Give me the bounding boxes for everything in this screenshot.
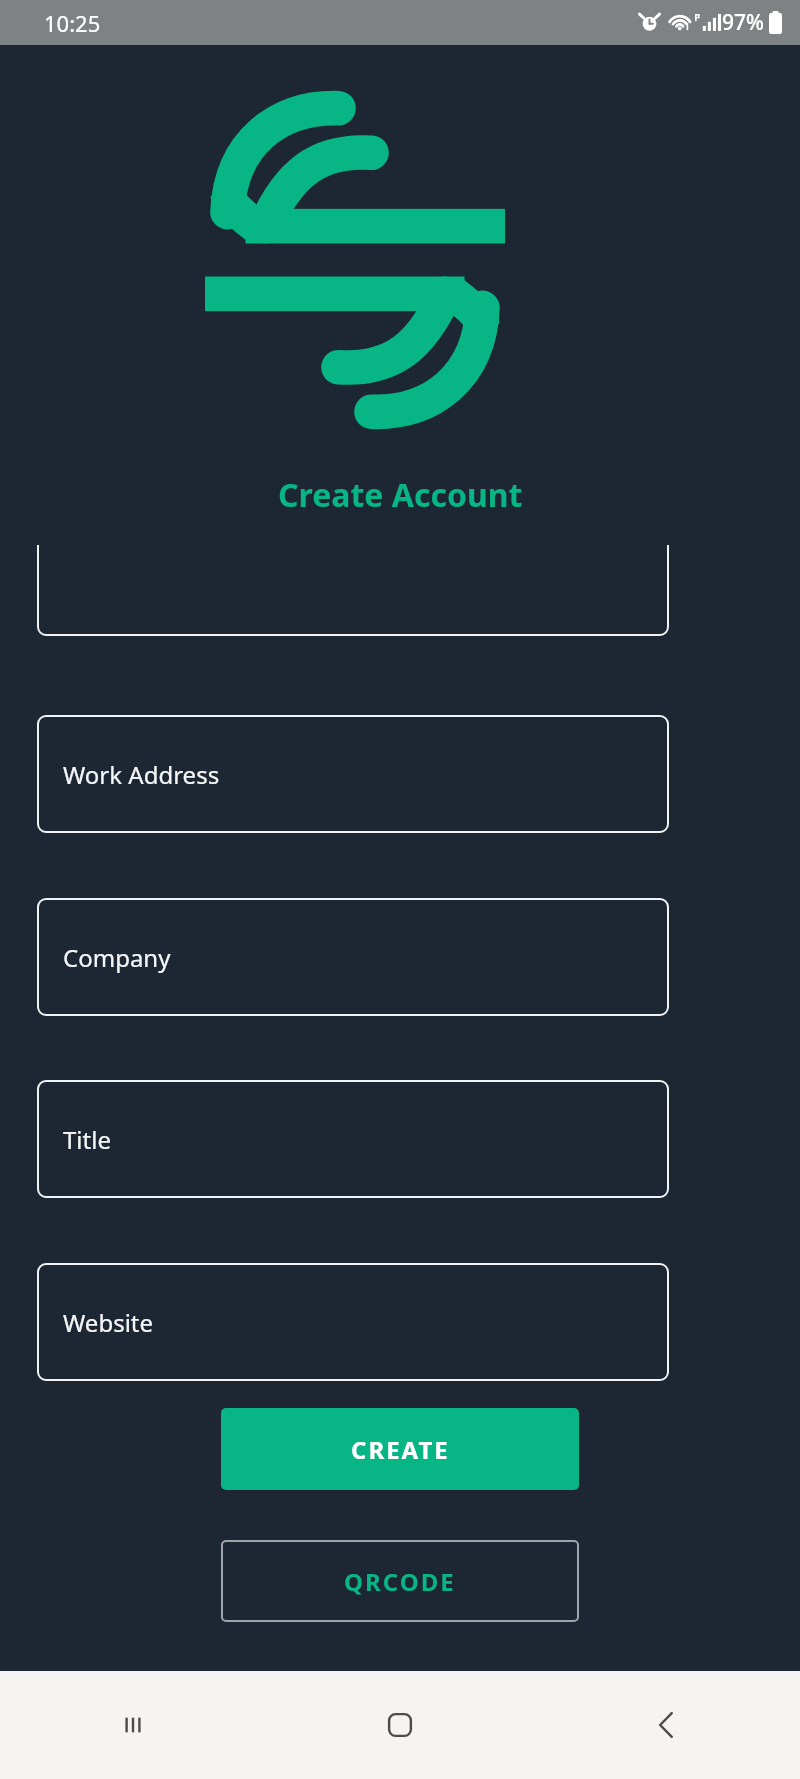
button[interactable]: QRCODE [221,1540,579,1622]
staticText: Website [63,1306,154,1339]
staticText: 97% [722,8,764,37]
staticText: CREATE [351,1433,450,1466]
button[interactable]: Website [37,1263,669,1381]
staticText: 10:25 [44,8,101,38]
button[interactable]: Home [266,1671,533,1779]
staticText: Work Address [63,758,220,791]
button[interactable]: CREATE [221,1408,579,1490]
staticText: Company [63,941,171,974]
button[interactable] [37,545,669,650]
staticText: Create Account [278,473,523,517]
button[interactable]: Recent apps [0,1671,266,1779]
button[interactable]: Company [37,898,669,1016]
button[interactable]: Back [533,1671,800,1779]
button[interactable]: Work Address [37,715,669,833]
staticText: QRCODE [344,1565,456,1598]
button[interactable]: Title [37,1080,669,1198]
staticText: Title [63,1123,111,1156]
